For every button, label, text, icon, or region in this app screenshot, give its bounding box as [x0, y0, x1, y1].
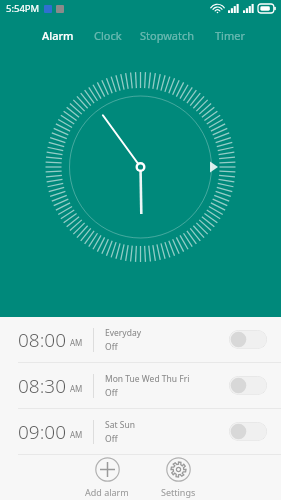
staticText: Add alarm — [85, 486, 129, 498]
staticText: 5:54PM — [6, 2, 40, 15]
button[interactable]: Toggle alarm — [229, 330, 267, 349]
button[interactable]: 08:00 — [0, 317, 281, 362]
staticText: 09:00 — [18, 419, 67, 445]
button[interactable]: 09:00 — [0, 409, 281, 454]
staticText: Settings — [161, 486, 196, 498]
staticText: 08:30 — [18, 373, 67, 399]
staticText: AM — [70, 337, 83, 348]
staticText: Off — [105, 387, 118, 399]
button[interactable]: Alarm — [40, 26, 76, 45]
staticText: Clock — [94, 28, 122, 43]
staticText: Stopwatch — [140, 28, 195, 43]
staticText: Sat Sun — [105, 419, 135, 431]
staticText: Off — [105, 433, 118, 445]
button[interactable]: Add alarm — [79, 455, 135, 500]
button[interactable]: Stopwatch — [138, 26, 197, 45]
staticText: Mon Tue Wed Thu Fri — [105, 373, 190, 385]
staticText: Everyday — [105, 327, 142, 339]
staticText: Timer — [215, 28, 245, 43]
staticText: AM — [70, 383, 83, 394]
staticText: Off — [105, 341, 118, 353]
button[interactable]: Toggle alarm — [229, 376, 267, 395]
button[interactable]: Clock — [92, 26, 124, 45]
button[interactable]: Toggle alarm — [229, 422, 267, 441]
staticText: 08:00 — [18, 327, 67, 353]
staticText: AM — [70, 429, 83, 440]
staticText: Alarm — [42, 28, 74, 43]
button[interactable]: 08:30 — [0, 363, 281, 408]
button[interactable]: Timer — [213, 26, 247, 45]
button[interactable]: Settings — [155, 455, 202, 500]
